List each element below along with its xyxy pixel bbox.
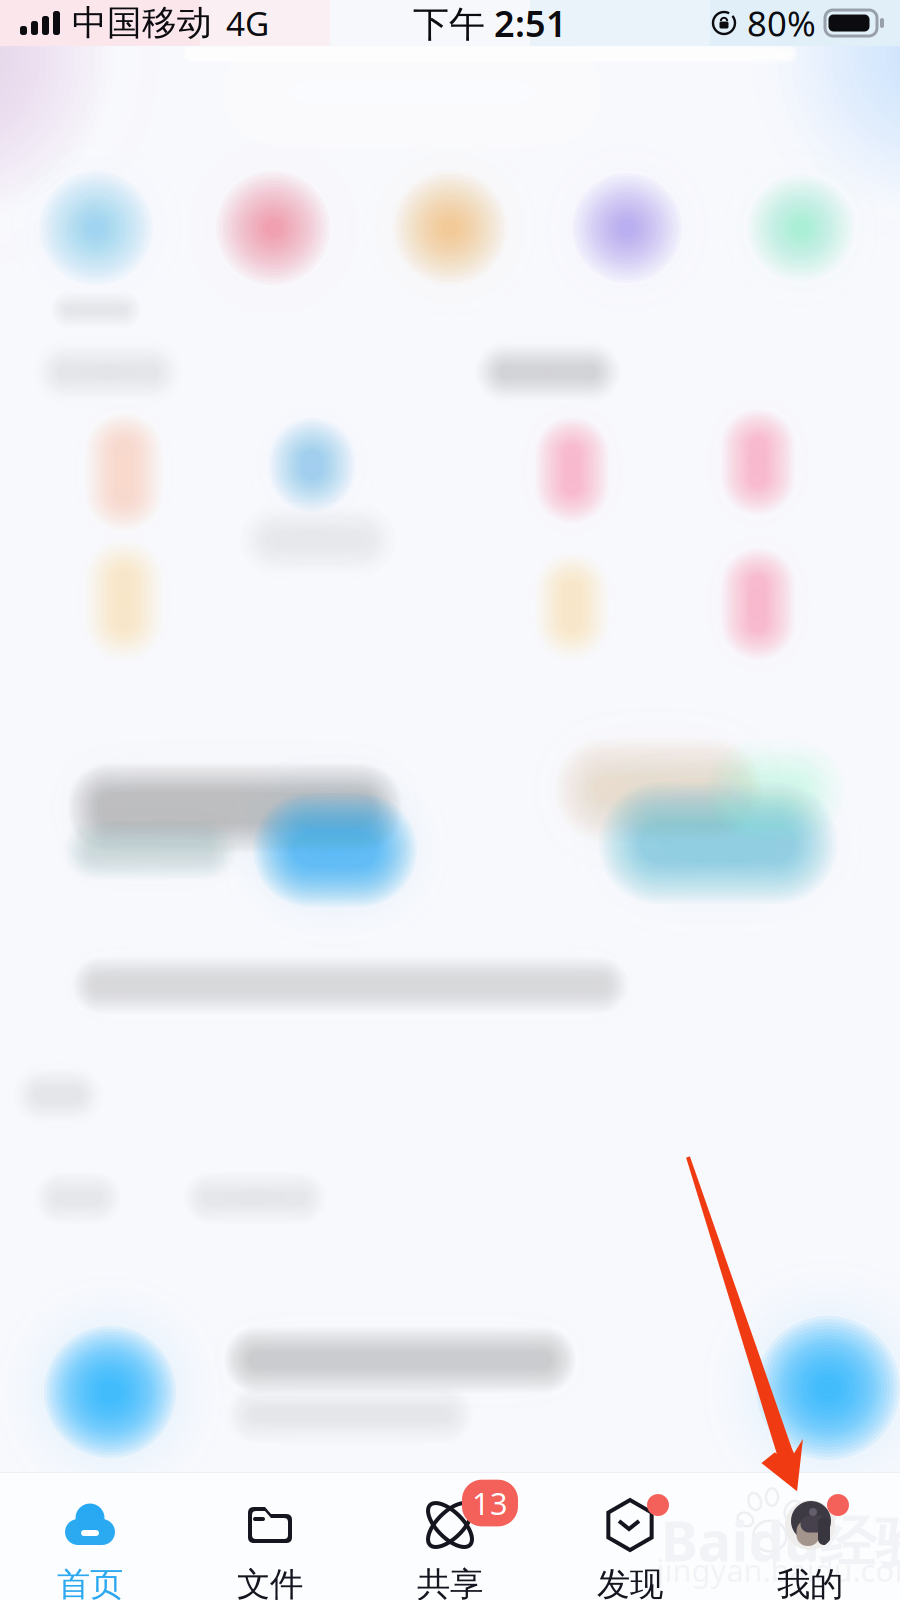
button[interactable]: 首页: [0, 1459, 180, 1600]
button[interactable]: 13: [360, 1459, 540, 1600]
staticText: 4G: [226, 1, 269, 45]
staticText: 首页: [57, 1564, 123, 1600]
button[interactable]: 我的: [720, 1459, 900, 1600]
staticText: 共享: [417, 1564, 483, 1600]
staticText: 我的: [777, 1564, 843, 1600]
staticText: 发现: [597, 1564, 663, 1600]
staticText: 中国移动: [72, 2, 212, 44]
staticText: 80%: [747, 0, 816, 46]
button[interactable]: 文件: [180, 1459, 360, 1600]
staticText: 文件: [237, 1564, 303, 1600]
button[interactable]: 发现: [540, 1459, 720, 1600]
staticText: Baidu经验: [660, 1503, 900, 1577]
staticText: jingyan.baidu.com: [656, 1550, 900, 1590]
staticText: 下午 2:51: [413, 0, 567, 47]
staticText: 13: [472, 1483, 508, 1523]
